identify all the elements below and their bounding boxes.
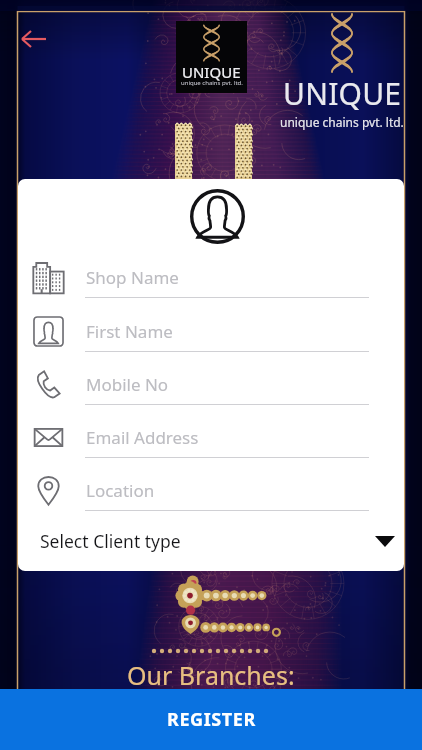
staticText: Email Address xyxy=(86,426,199,449)
button[interactable] xyxy=(18,414,404,466)
staticText: Select Client type xyxy=(40,529,181,553)
staticText: UNIQUE xyxy=(283,73,402,114)
button[interactable]: Back xyxy=(14,23,54,55)
button[interactable] xyxy=(18,308,404,360)
staticText: Shop Name xyxy=(86,266,179,289)
staticText: UNIQUE xyxy=(182,62,241,82)
button[interactable] xyxy=(18,254,404,306)
staticText: First Name xyxy=(86,320,173,343)
staticText: Location xyxy=(86,479,155,502)
button[interactable]: Select Client type xyxy=(18,515,404,567)
staticText: REGISTER xyxy=(167,707,256,732)
staticText: unique chains pvt. ltd. xyxy=(280,114,404,130)
button[interactable] xyxy=(18,467,404,519)
staticText: Our Branches: xyxy=(127,658,295,692)
button[interactable]: REGISTER xyxy=(0,689,422,750)
button[interactable] xyxy=(18,361,404,413)
staticText: Mobile No xyxy=(86,373,169,396)
staticText: unique chains pvt. ltd. xyxy=(181,79,243,87)
